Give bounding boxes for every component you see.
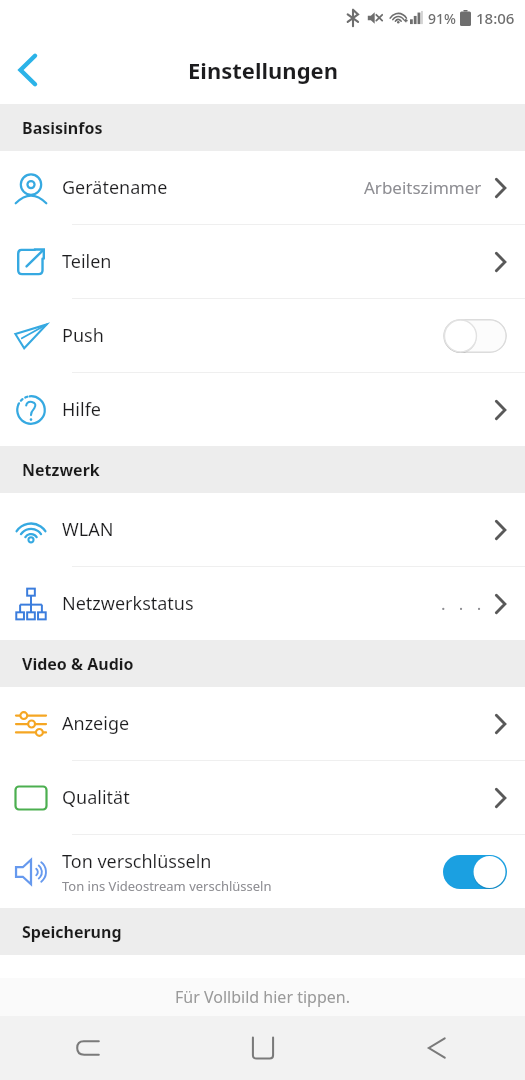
staticText: Hilfe (62, 397, 101, 422)
button[interactable]: Ton verschlüsseln (0, 835, 525, 908)
staticText: Ton ins Videostream verschlüsseln (62, 877, 272, 895)
staticText: 18:06 (476, 8, 515, 28)
button[interactable]: Anzeige (0, 687, 525, 760)
staticText: Speicherung (22, 921, 122, 943)
staticText: WLAN (62, 517, 114, 542)
button[interactable]: Netzwerkstatus (0, 567, 525, 640)
button[interactable]: An (443, 855, 507, 889)
staticText: Qualität (62, 785, 130, 810)
staticText: Push (62, 323, 104, 348)
button[interactable]: Gerätename (0, 151, 525, 224)
staticText: Anzeige (62, 711, 130, 736)
staticText: Basisinfos (22, 117, 103, 139)
staticText: Netzwerkstatus (62, 591, 194, 616)
staticText: Netzwerk (22, 459, 100, 481)
button[interactable]: Für Vollbild hier tippen. (0, 978, 525, 1016)
staticText: Einstellungen (188, 55, 338, 85)
button[interactable]: Aus (443, 319, 507, 353)
button[interactable]: Zurück (350, 1016, 525, 1080)
button[interactable]: Teilen (0, 225, 525, 298)
button[interactable]: Zurück (0, 42, 56, 98)
button[interactable]: Qualität (0, 761, 525, 834)
staticText: Ton verschlüsseln (62, 849, 212, 874)
staticText: 91% (428, 9, 456, 28)
button[interactable]: Letzte Apps (0, 1016, 175, 1080)
button[interactable]: Hilfe (0, 373, 525, 446)
button[interactable]: WLAN (0, 493, 525, 566)
staticText: Für Vollbild hier tippen. (175, 986, 350, 1008)
staticText: Video & Audio (22, 653, 134, 675)
staticText: Teilen (62, 249, 112, 274)
staticText: . . . (441, 592, 482, 615)
button[interactable]: Push (0, 299, 525, 372)
staticText: Gerätename (62, 175, 168, 200)
staticText: Arbeitszimmer (364, 176, 482, 199)
button[interactable]: Startseite (175, 1016, 350, 1080)
